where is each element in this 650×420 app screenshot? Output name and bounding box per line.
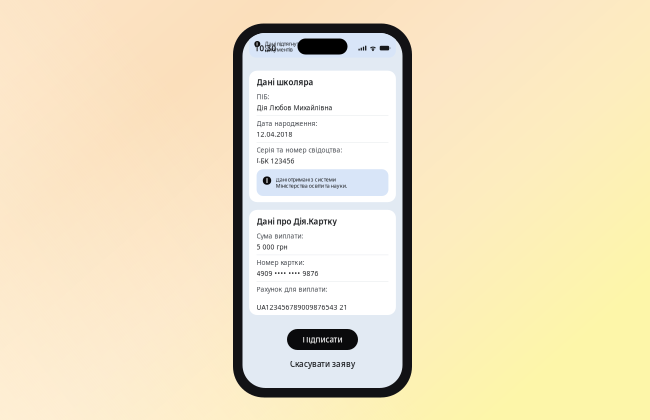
staticText: Дія Любов Михайлівна — [257, 103, 333, 112]
staticText: I-БК 123456 — [257, 156, 295, 165]
staticText: Дата народження: — [257, 119, 318, 128]
staticText: Підписати — [302, 334, 342, 345]
staticText: 10:30 — [254, 43, 276, 53]
staticText: 12.04.2018 — [257, 130, 293, 139]
staticText: Дані про Дія.Картку — [257, 216, 337, 227]
staticText: UA123456789009876543 21 — [257, 303, 348, 312]
staticText: Скасувати заяву — [290, 359, 355, 369]
staticText: документів — [265, 46, 293, 53]
staticText: Номер картки: — [257, 258, 305, 267]
staticText: Сума виплати: — [257, 231, 304, 240]
button[interactable]: Підписати — [287, 329, 358, 350]
staticText: 4909 •••• •••• 9876 — [257, 269, 319, 278]
staticText: Міністерства освіти та науки. — [276, 182, 347, 189]
staticText: Дані підтягнуто з цифрових — [265, 40, 332, 47]
staticText: i — [256, 40, 258, 47]
staticText: i — [266, 176, 268, 185]
staticText: Рахунок для виплати: — [257, 285, 328, 294]
button[interactable]: Скасувати заяву — [290, 357, 355, 370]
staticText: ПІБ: — [257, 92, 270, 101]
staticText: Дані отримані з системи — [276, 176, 336, 183]
staticText: Дані школяра — [257, 77, 314, 87]
staticText: 5 000 грн — [257, 242, 288, 251]
staticText: Серія та номер свідоцтва: — [257, 145, 343, 154]
